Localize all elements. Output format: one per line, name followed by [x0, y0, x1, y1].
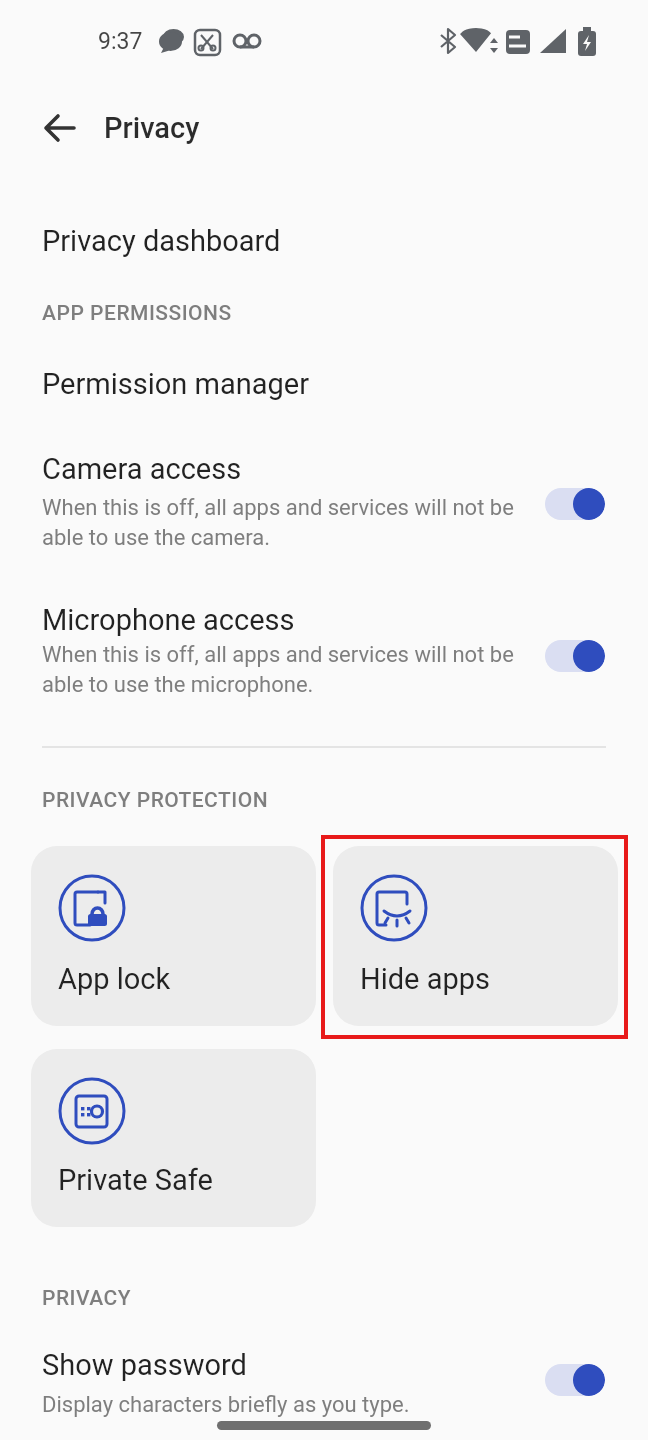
- staticText: Permission manager: [42, 367, 310, 401]
- staticText: APP PERMISSIONS: [42, 301, 232, 326]
- staticText: App lock: [58, 962, 171, 996]
- button[interactable]: [0, 350, 648, 420]
- staticText: When this is off, all apps and services …: [42, 495, 514, 521]
- button[interactable]: Hide apps: [333, 846, 618, 1026]
- staticText: Camera access: [42, 452, 242, 486]
- staticText: PRIVACY: [42, 1286, 132, 1311]
- staticText: Hide apps: [360, 962, 490, 996]
- staticText: Private Safe: [58, 1163, 213, 1197]
- staticText: PRIVACY PROTECTION: [42, 788, 269, 813]
- button[interactable]: [545, 488, 605, 520]
- button[interactable]: [0, 442, 648, 557]
- staticText: When this is off, all apps and services …: [42, 642, 514, 668]
- button[interactable]: [0, 1338, 648, 1428]
- button[interactable]: Private Safe: [31, 1049, 316, 1227]
- staticText: able to use the camera.: [42, 525, 271, 551]
- button[interactable]: [34, 108, 80, 148]
- staticText: Display characters briefly as you type.: [42, 1392, 410, 1418]
- staticText: Microphone access: [42, 603, 295, 637]
- staticText: Privacy dashboard: [42, 224, 281, 258]
- staticText: Privacy: [104, 111, 200, 145]
- staticText: Show password: [42, 1348, 247, 1382]
- staticText: able to use the microphone.: [42, 672, 314, 698]
- button[interactable]: App lock: [31, 846, 316, 1026]
- button[interactable]: [0, 592, 648, 707]
- button[interactable]: [545, 640, 605, 672]
- button[interactable]: [545, 1364, 605, 1396]
- staticText: 9:37: [98, 28, 143, 55]
- button[interactable]: [0, 206, 648, 278]
